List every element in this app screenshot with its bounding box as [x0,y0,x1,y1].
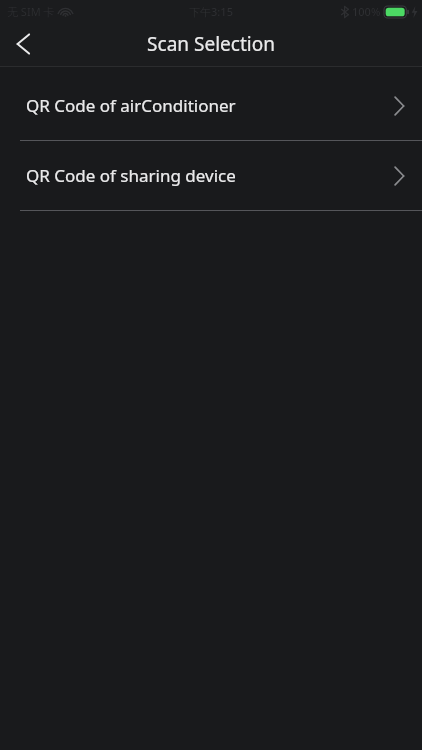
button[interactable]: Back [0,22,46,66]
button[interactable]: QR Code of airConditioner [0,71,422,140]
staticText: QR Code of sharing device [26,164,236,187]
staticText: 下午3:15 [189,4,233,19]
staticText: QR Code of airConditioner [26,94,236,117]
button[interactable]: QR Code of sharing device [0,141,422,210]
staticText: Scan Selection [147,31,275,57]
staticText: 无 SIM 卡 [7,4,55,19]
staticText: 100% [352,4,381,19]
